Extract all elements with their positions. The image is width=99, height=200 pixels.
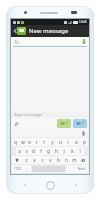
button[interactable]: c [38, 156, 46, 164]
staticText: m [72, 157, 77, 163]
button[interactable]: g [44, 147, 52, 155]
staticText: g [47, 148, 50, 154]
button[interactable]: e [26, 138, 33, 146]
button[interactable]: Voice input [80, 130, 87, 137]
staticText: s [25, 148, 28, 154]
button[interactable]: Send message [73, 119, 87, 128]
staticText: ?123 [14, 167, 21, 171]
staticText: n [65, 157, 68, 163]
button[interactable]: Attach [11, 118, 22, 129]
staticText: u [59, 139, 62, 145]
staticText: d [32, 148, 35, 154]
staticText: y [51, 139, 54, 145]
staticText: , [26, 167, 28, 172]
button[interactable]: n [62, 156, 70, 164]
button[interactable]: Delete [78, 156, 88, 164]
staticText: c [41, 157, 44, 163]
button[interactable]: b [54, 156, 62, 164]
button[interactable]: p [80, 138, 88, 146]
staticText: To [14, 39, 19, 45]
button[interactable]: Type message [11, 111, 89, 118]
staticText: j [63, 148, 65, 154]
staticText: h [55, 148, 58, 154]
staticText: Type message [14, 112, 42, 118]
staticText: a [18, 148, 21, 154]
button[interactable]: o [72, 138, 80, 146]
staticText: . [69, 167, 71, 172]
staticText: i [67, 139, 69, 145]
button[interactable]: r [33, 138, 40, 146]
staticText: e [28, 139, 31, 145]
button[interactable]: Back [20, 180, 30, 190]
staticText: f [40, 148, 42, 154]
button[interactable]: t [40, 138, 48, 146]
button[interactable]: s [23, 147, 30, 155]
button[interactable]: Navigate up [13, 26, 17, 36]
button[interactable]: u [56, 138, 64, 146]
button[interactable]: Shift [12, 156, 22, 164]
button[interactable]: k [68, 147, 76, 155]
staticText: z [25, 157, 28, 163]
staticText: q [14, 139, 17, 145]
button[interactable]: f [37, 147, 44, 155]
button[interactable]: Send SMS [57, 119, 71, 128]
button[interactable]: q [12, 138, 19, 146]
button[interactable]: d [30, 147, 37, 155]
staticText: l [79, 148, 81, 154]
button[interactable]: ?123 [12, 165, 23, 173]
button[interactable]: Home [43, 178, 57, 192]
button[interactable]: Add contact [80, 38, 87, 45]
staticText: w [21, 139, 25, 145]
button[interactable]: i [64, 138, 72, 146]
button[interactable]: w [19, 138, 26, 146]
staticText: Next [78, 167, 85, 171]
staticText: r [36, 139, 38, 145]
button[interactable]: l [76, 147, 84, 155]
button[interactable]: z [22, 156, 30, 164]
staticText: 12:45 [79, 20, 87, 24]
staticText: k [71, 148, 74, 154]
button[interactable] [17, 27, 26, 35]
staticText: t [43, 139, 45, 145]
button[interactable]: , [23, 165, 31, 173]
staticText: b [57, 157, 60, 163]
button[interactable]: x [30, 156, 38, 164]
button[interactable]: To [11, 37, 89, 46]
button[interactable]: a [16, 147, 23, 155]
button[interactable]: m [70, 156, 78, 164]
staticText: o [75, 139, 78, 145]
button[interactable]: Recent apps [71, 180, 81, 190]
button[interactable]: Next [74, 165, 88, 173]
button[interactable]: v [46, 156, 54, 164]
button[interactable]: h [52, 147, 60, 155]
staticText: v [49, 157, 52, 163]
staticText: p [83, 139, 86, 145]
button[interactable]: j [60, 147, 68, 155]
staticText: New message [29, 27, 69, 35]
staticText: x [33, 157, 36, 163]
button[interactable]: y [48, 138, 56, 146]
